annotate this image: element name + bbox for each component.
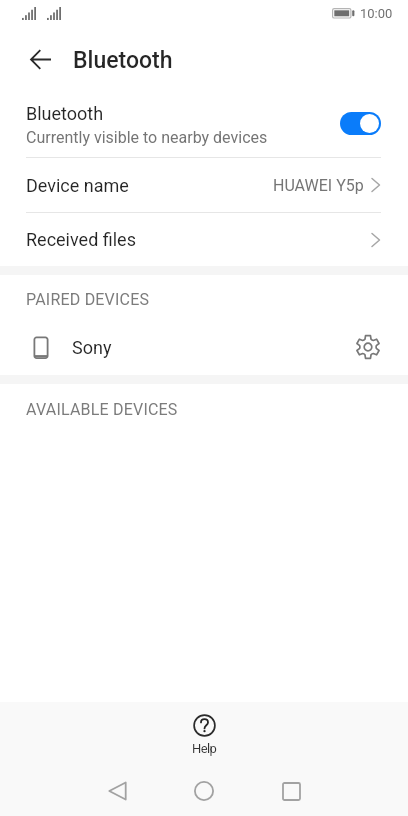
button[interactable]: Sony <box>0 321 408 373</box>
button[interactable]: Back <box>87 766 147 816</box>
staticText: PAIRED DEVICES <box>26 290 150 309</box>
button[interactable]: Back <box>22 41 59 78</box>
staticText: 10:00 <box>360 6 393 21</box>
button[interactable]: Bluetooth <box>0 92 408 157</box>
button[interactable]: Received files <box>0 213 408 266</box>
staticText: Sony <box>72 337 112 358</box>
staticText: Device name <box>26 175 129 196</box>
staticText: Currently visible to nearby devices <box>26 128 268 147</box>
button[interactable]: Recent apps <box>261 766 321 816</box>
staticText: Help <box>192 741 217 756</box>
button[interactable]: Home <box>174 766 234 816</box>
staticText: AVAILABLE DEVICES <box>26 400 178 419</box>
button[interactable]: Device settings <box>353 332 383 362</box>
staticText: Received files <box>26 229 136 250</box>
staticText: HUAWEI Y5p <box>273 176 364 195</box>
button[interactable]: Bluetooth on <box>340 112 381 135</box>
staticText: Bluetooth <box>73 47 173 74</box>
button[interactable]: Help <box>179 711 229 759</box>
staticText: Bluetooth <box>26 103 104 124</box>
button[interactable]: Device name <box>0 158 408 212</box>
